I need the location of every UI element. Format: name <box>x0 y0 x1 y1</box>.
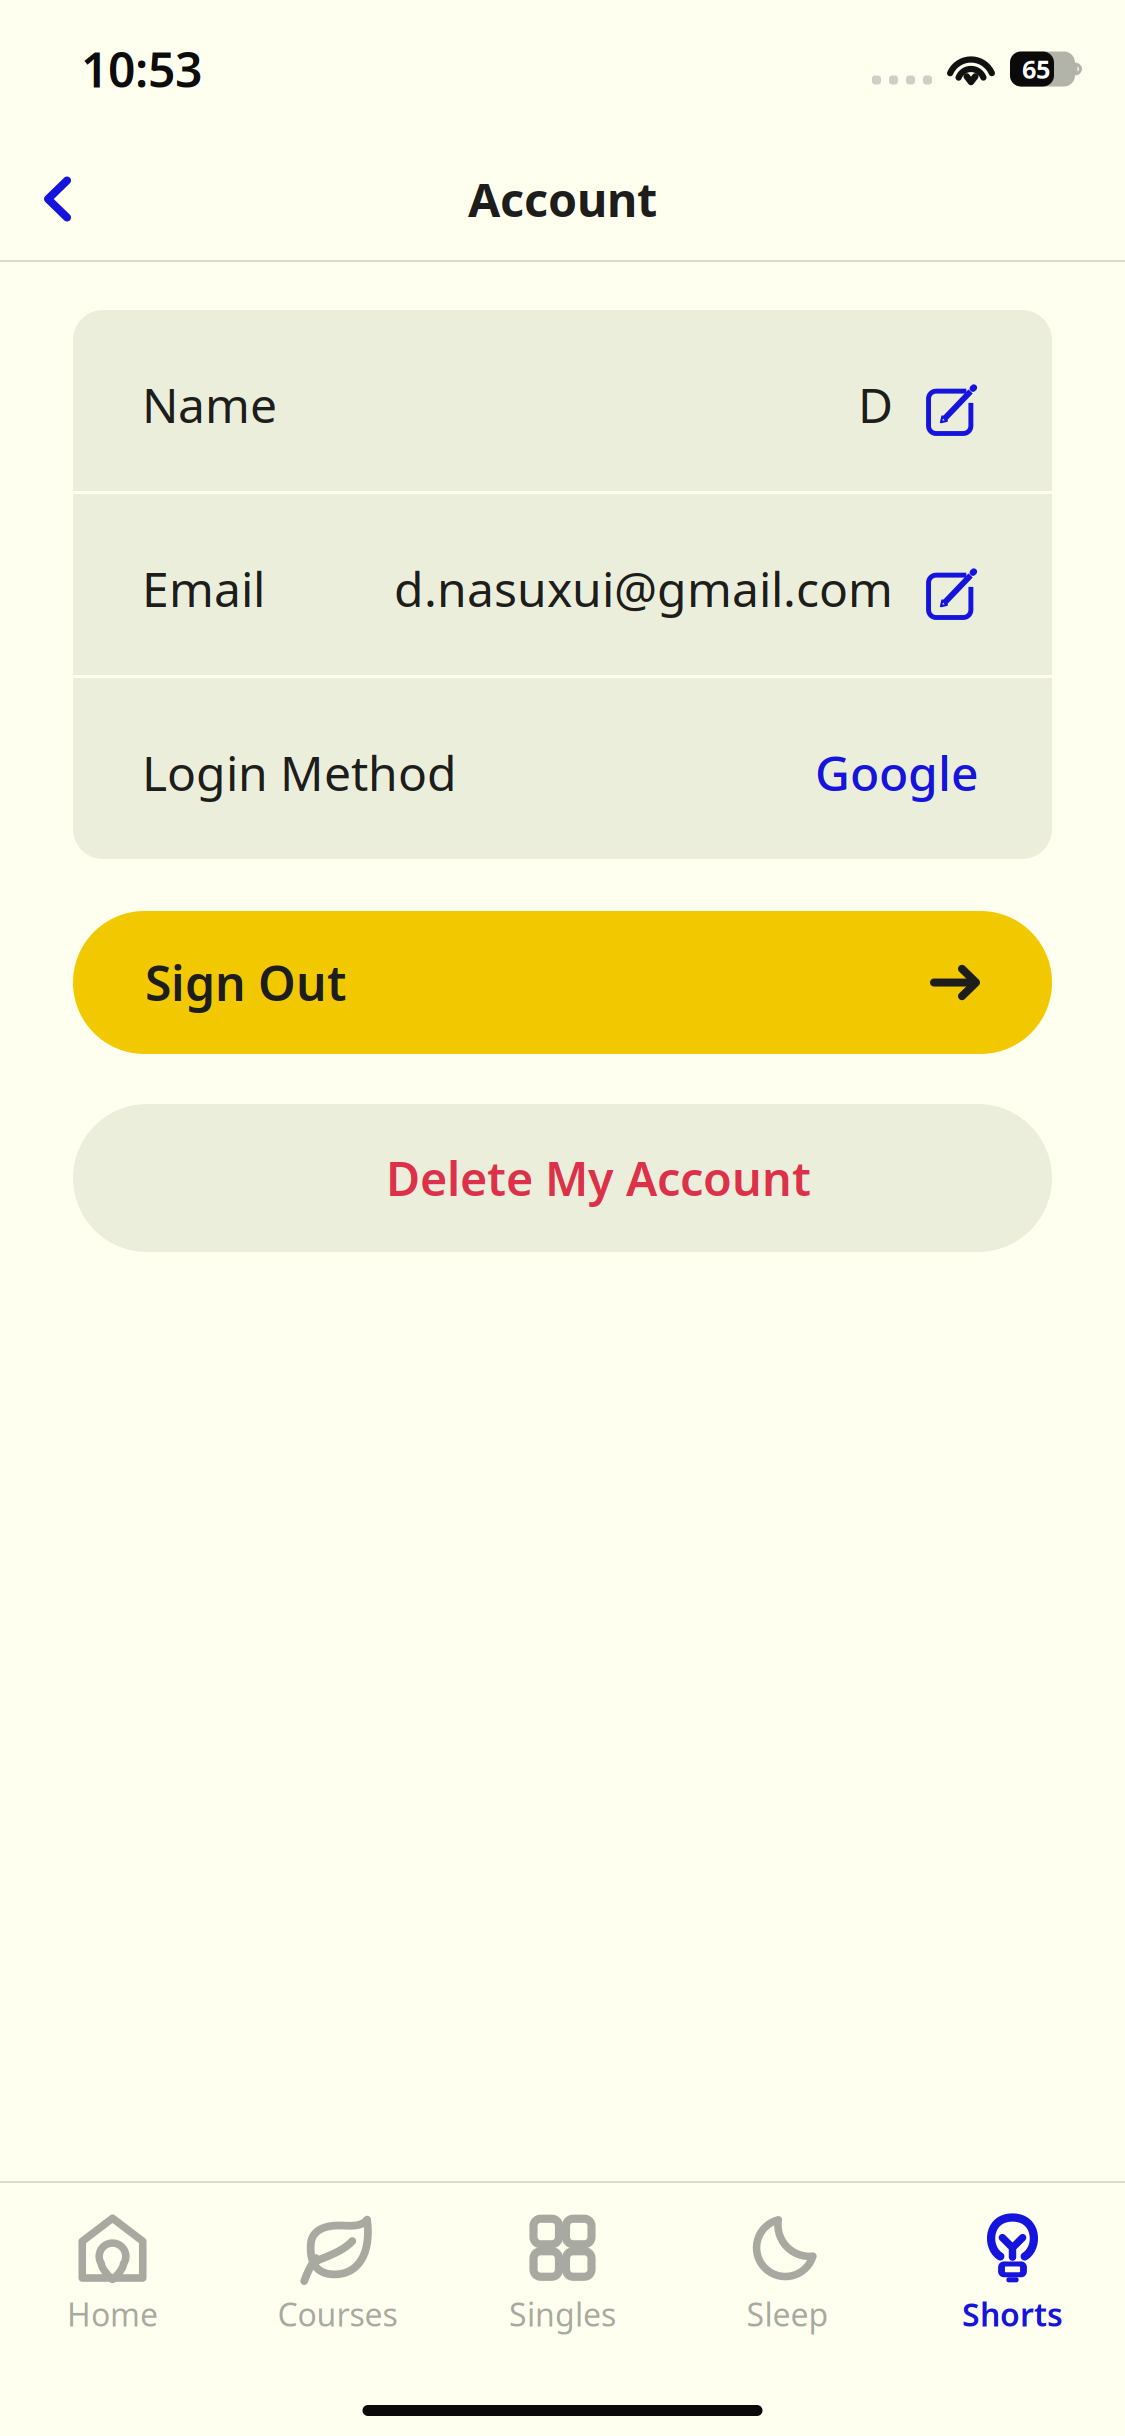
staticText: Google <box>815 741 979 804</box>
button[interactable]: Shorts <box>900 2204 1125 2342</box>
staticText: 65 <box>1022 52 1050 86</box>
staticText: Account <box>468 168 657 230</box>
staticText: Login Method <box>142 741 457 804</box>
button[interactable]: Back <box>0 148 105 249</box>
button[interactable]: Home <box>0 2204 225 2342</box>
staticText: Sign Out <box>145 951 346 1014</box>
staticText: Email <box>142 557 265 620</box>
staticText: d.nasuxui@gmail.com <box>394 557 893 620</box>
staticText: Delete My Account <box>386 1147 811 1209</box>
staticText: Home <box>67 2293 158 2335</box>
staticText: D <box>858 373 893 436</box>
staticText: Sleep <box>746 2293 828 2335</box>
button[interactable]: Delete My Account <box>73 1104 1052 1252</box>
button[interactable]: Sleep <box>675 2204 900 2342</box>
staticText: 10:53 <box>81 37 202 101</box>
staticText: Shorts <box>962 2293 1063 2335</box>
staticText: Courses <box>277 2293 397 2335</box>
button[interactable]: Sign Out <box>73 911 1052 1054</box>
button[interactable]: Singles <box>450 2204 675 2342</box>
staticText: Name <box>142 373 277 436</box>
staticText: Singles <box>509 2293 616 2335</box>
button[interactable]: Courses <box>225 2204 450 2342</box>
